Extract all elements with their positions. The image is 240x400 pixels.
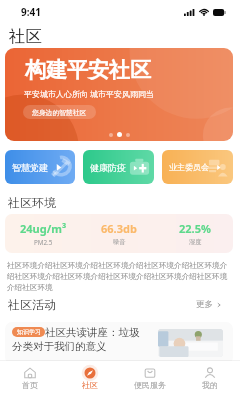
staticText: PM2.5	[34, 238, 53, 247]
staticText: 湿度	[189, 238, 202, 246]
button[interactable]: 业主委员会	[162, 150, 233, 184]
staticText: 噪音	[113, 238, 126, 246]
staticText: 社区环境	[8, 195, 56, 210]
staticText: 社区活动	[8, 297, 56, 312]
button[interactable]: 健康防疫	[83, 150, 154, 184]
button[interactable]: 便民服务	[120, 361, 180, 400]
staticText: 智慧党建	[12, 162, 48, 173]
staticText: 社区	[9, 26, 42, 47]
staticText: 22.5%	[179, 221, 211, 236]
staticText: 健康防疫	[90, 162, 126, 173]
staticText: 知识学习	[17, 328, 41, 336]
button[interactable]: 社区	[60, 361, 120, 400]
button[interactable]: 更多	[196, 299, 222, 310]
staticText: 更多	[196, 299, 213, 310]
button[interactable]: 我的	[180, 361, 240, 400]
staticText: 24ug/m³	[20, 221, 67, 236]
staticText: 构建平安社区	[25, 57, 151, 83]
staticText: 首页	[22, 380, 38, 390]
button[interactable]: 社区	[9, 26, 42, 47]
button[interactable]: 构建平安社区	[5, 48, 233, 141]
staticText: [知识学习]社区共读讲座：垃圾分类对于我们的意义	[12, 326, 148, 354]
staticText: 9:41	[21, 5, 41, 19]
staticText: 便民服务	[134, 380, 166, 390]
staticText: 社区环境介绍社区环境介绍社区环境介绍社区环境介绍社区环境介绍社区环境介绍社区环境…	[7, 261, 234, 293]
staticText: 您身边的智慧社区	[32, 108, 87, 117]
button[interactable]: 智慧党建	[5, 150, 75, 184]
button[interactable]: 首页	[0, 361, 60, 400]
staticText: 我的	[202, 380, 218, 390]
staticText: 66.3db	[101, 221, 137, 236]
staticText: 社区	[82, 380, 98, 390]
button[interactable]: [知识学习]社区共读讲座：垃圾分类对于我们的意义	[5, 322, 233, 364]
staticText: 业主委员会	[169, 162, 209, 172]
staticText: 平安城市人心所向 城市平安风雨同当	[24, 88, 155, 99]
